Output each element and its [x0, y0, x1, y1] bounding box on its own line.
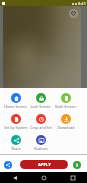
button[interactable]: Buttons	[28, 130, 53, 151]
button[interactable]: Favorite	[69, 9, 78, 18]
staticText: APPLY	[38, 162, 51, 168]
staticText: Both Screen	[55, 104, 76, 109]
staticText: Crop and Set	[30, 125, 52, 130]
button[interactable]: Share	[4, 161, 12, 169]
button[interactable]: Download	[53, 109, 78, 130]
staticText: Lock Screen	[30, 104, 51, 109]
staticText: Buttons	[34, 146, 48, 151]
button[interactable]: APPLY	[20, 160, 68, 169]
button[interactable]: Home Screen	[3, 88, 28, 109]
button[interactable]: Lock Screen	[28, 88, 53, 109]
staticText: Set by System	[4, 125, 28, 130]
staticText: Download	[57, 125, 75, 130]
button[interactable]: Recents	[58, 172, 87, 183]
button[interactable]: Crop and Set	[28, 109, 53, 130]
staticText: Home Screen	[4, 104, 27, 109]
staticText: 8:41	[78, 1, 86, 6]
button[interactable]: Back	[0, 172, 29, 183]
button[interactable]: Home	[29, 172, 58, 183]
staticText: Share	[11, 146, 21, 151]
button[interactable]: Share	[3, 130, 28, 151]
button[interactable]: Download	[73, 161, 81, 169]
button[interactable]: Set by System	[3, 109, 28, 130]
button[interactable]: Both Screen	[53, 88, 78, 109]
